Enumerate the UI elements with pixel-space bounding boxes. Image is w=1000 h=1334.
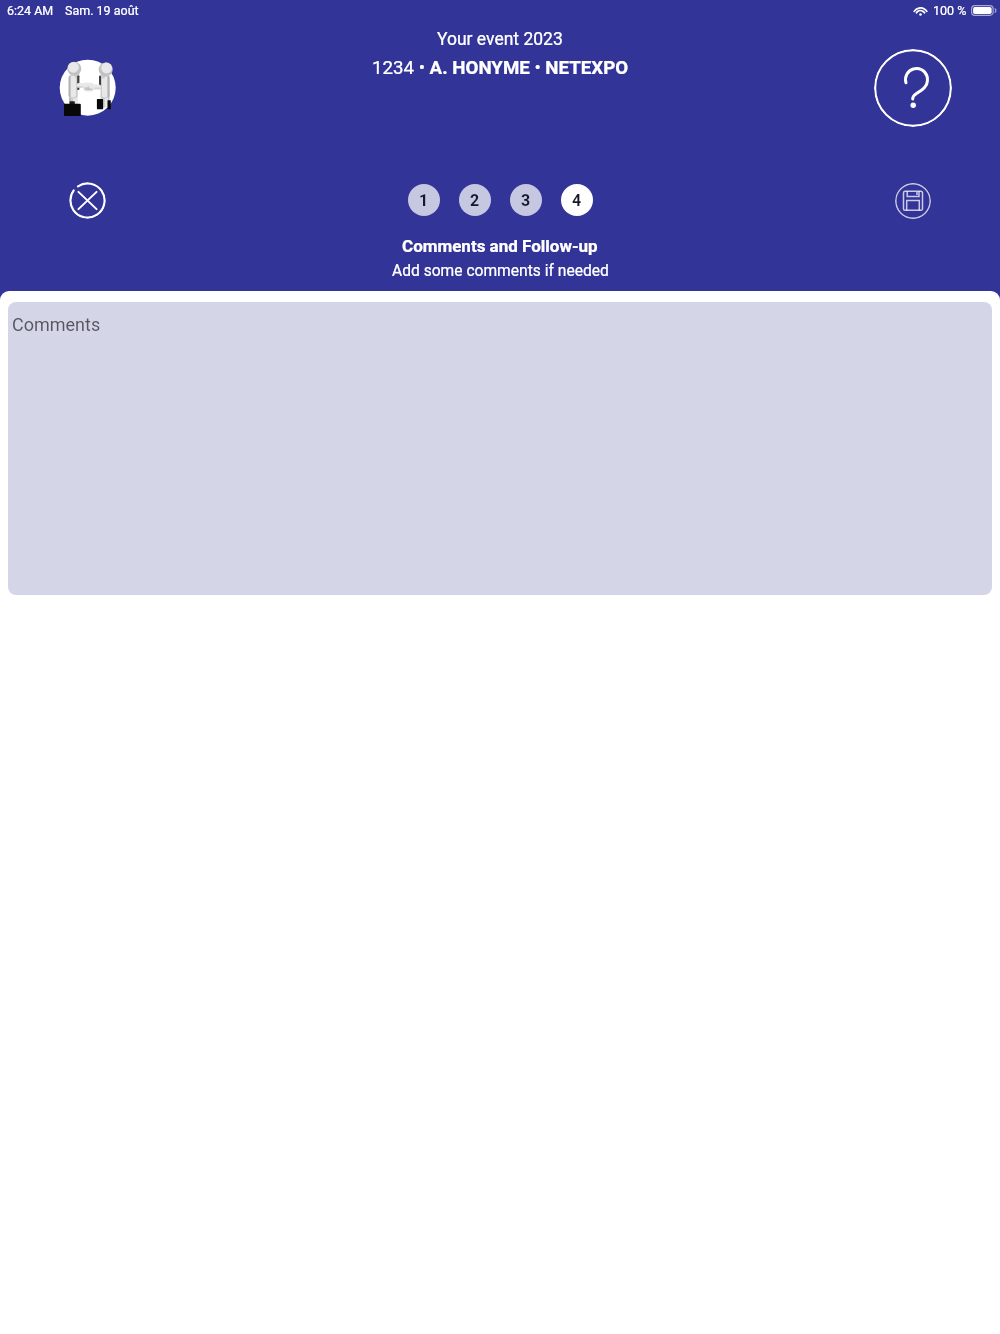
staticText: 1234 • A. HONYME • NETEXPO <box>372 57 629 79</box>
button[interactable]: 4 <box>561 184 593 216</box>
button[interactable]: 3 <box>510 184 542 216</box>
button[interactable]: Event logo <box>55 52 122 122</box>
staticText: 2 <box>470 191 480 210</box>
staticText: 100 % <box>933 3 967 18</box>
staticText: Comments and Follow-up <box>402 236 598 256</box>
staticText: 4 <box>572 191 582 210</box>
staticText: Comments <box>12 314 101 335</box>
button[interactable]: Save <box>895 183 931 219</box>
button[interactable]: Help <box>874 49 952 127</box>
button[interactable]: 2 <box>459 184 491 216</box>
button[interactable]: Comments <box>8 302 992 595</box>
button[interactable]: 1 <box>408 184 440 216</box>
staticText: Sam. 19 août <box>65 3 139 18</box>
button[interactable]: Close <box>69 182 106 219</box>
staticText: 6:24 AM <box>7 3 54 18</box>
staticText: 3 <box>521 191 531 210</box>
staticText: 1 <box>419 191 429 210</box>
staticText: Your event 2023 <box>437 29 563 50</box>
staticText: Add some comments if needed <box>392 262 609 280</box>
